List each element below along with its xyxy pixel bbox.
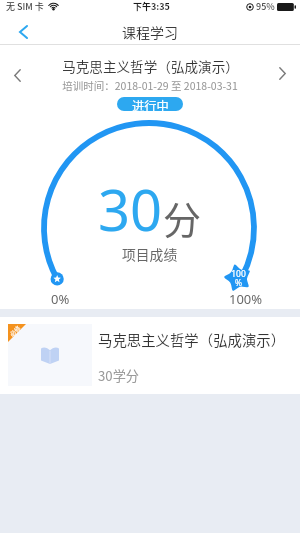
- staticText: 30学分: [98, 366, 140, 385]
- staticText: 0%: [51, 290, 70, 308]
- staticText: 100%: [229, 290, 263, 308]
- staticText: 100 %: [231, 268, 246, 289]
- button[interactable]: 必修: [0, 317, 300, 394]
- button[interactable]: 进行中: [117, 97, 183, 111]
- staticText: 进行中: [132, 97, 169, 111]
- button[interactable]: Next course: [265, 55, 299, 91]
- staticText: 30: [98, 171, 163, 247]
- staticText: 项目成绩: [122, 244, 178, 264]
- staticText: 95%: [256, 0, 275, 13]
- staticText: 课程学习: [122, 22, 178, 42]
- staticText: 无 SIM 卡: [6, 0, 44, 13]
- staticText: 马克思主义哲学（弘成演示）: [98, 329, 286, 350]
- staticText: 下午3:35: [133, 0, 170, 13]
- staticText: 马克思主义哲学（弘成演示）: [62, 56, 239, 76]
- button[interactable]: Previous course: [0, 57, 34, 93]
- staticText: 培训时间：2018-01-29 至 2018-03-31: [62, 78, 238, 93]
- button[interactable]: Back: [0, 18, 46, 45]
- staticText: 分: [163, 190, 202, 245]
- staticText: 必修: [7, 323, 23, 338]
